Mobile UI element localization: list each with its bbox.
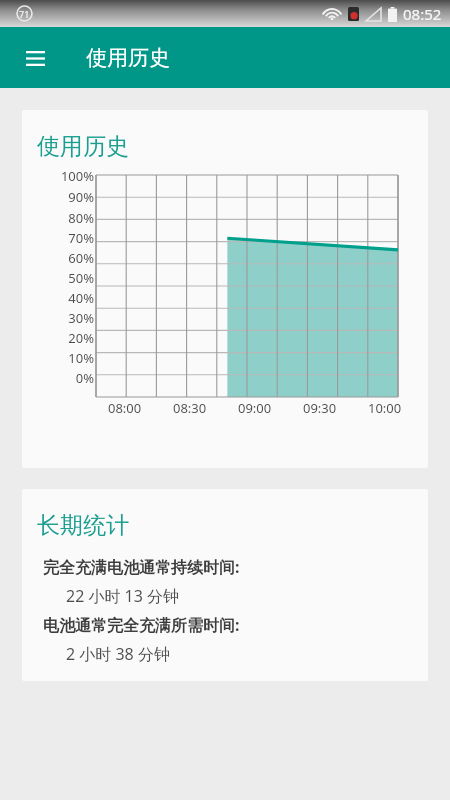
staticText: 70% (68, 229, 94, 247)
staticText: 10:00 (368, 399, 402, 417)
staticText: 50% (68, 269, 94, 287)
staticText: 2 小时 38 分钟 (66, 643, 170, 665)
staticText: 09:30 (303, 399, 337, 417)
staticText: 30% (68, 309, 94, 327)
staticText: 20% (68, 329, 94, 347)
staticText: 长期统计 (37, 511, 129, 540)
staticText: 使用历史 (37, 132, 129, 161)
button[interactable]: 使用历史 (22, 110, 428, 468)
staticText: 08:00 (108, 399, 142, 417)
staticText: 80% (68, 209, 94, 227)
staticText: 09:00 (238, 399, 272, 417)
staticText: 电池通常完全充满所需时间: (43, 614, 240, 636)
button[interactable]: Open navigation drawer (18, 41, 52, 75)
staticText: 10% (68, 349, 94, 367)
staticText: 22 小时 13 分钟 (66, 585, 180, 607)
staticText: 60% (68, 249, 94, 267)
staticText: 使用历史 (86, 45, 170, 71)
staticText: 90% (68, 188, 94, 206)
staticText: 100% (60, 167, 94, 185)
staticText: 40% (68, 289, 94, 307)
staticText: 71 (19, 8, 30, 20)
staticText: 完全充满电池通常持续时间: (43, 556, 240, 578)
staticText: 08:30 (173, 399, 207, 417)
staticText: 08:52 (403, 4, 442, 24)
button[interactable]: 长期统计 (22, 489, 428, 681)
staticText: 0% (75, 369, 94, 387)
